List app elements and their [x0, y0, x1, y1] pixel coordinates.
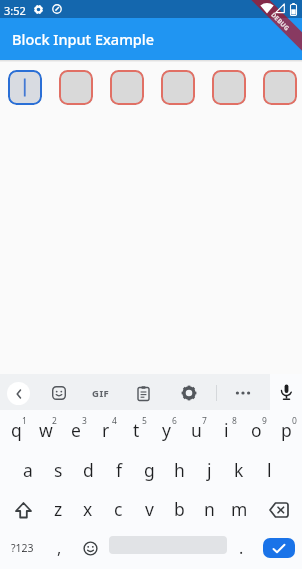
staticText: s — [54, 458, 63, 482]
staticText: 4 — [112, 415, 117, 427]
staticText: DEBUG — [270, 10, 292, 32]
staticText: d — [83, 458, 94, 482]
button[interactable]: v — [125, 489, 173, 529]
button[interactable] — [9, 496, 37, 524]
staticText: k — [234, 458, 244, 482]
staticText: 2 — [52, 415, 57, 427]
button[interactable]: . — [217, 528, 265, 568]
staticText: 7 — [202, 415, 207, 427]
button[interactable] — [263, 538, 295, 558]
button[interactable]: a — [4, 450, 52, 490]
button[interactable]: r — [82, 410, 130, 450]
staticText: Block Input Example — [12, 29, 155, 49]
button[interactable]: b — [155, 489, 203, 529]
button[interactable]: i — [202, 410, 250, 450]
staticText: t — [133, 418, 140, 442]
staticText: GIF — [92, 387, 110, 400]
button[interactable]: t — [112, 410, 160, 450]
button[interactable]: x — [64, 489, 112, 529]
staticText: 5 — [142, 415, 147, 427]
staticText: a — [23, 458, 33, 482]
button[interactable]: w — [22, 410, 70, 450]
staticText: v — [145, 497, 154, 521]
button[interactable]: c — [94, 489, 142, 529]
staticText: u — [191, 418, 202, 442]
button[interactable]: p — [262, 410, 302, 450]
staticText: i — [224, 418, 229, 442]
staticText: e — [71, 418, 81, 442]
button[interactable]: h — [155, 450, 203, 490]
staticText: 9 — [262, 415, 267, 427]
staticText: g — [144, 458, 155, 482]
button[interactable]: o — [232, 410, 280, 450]
staticText: h — [174, 458, 185, 482]
staticText: 3 — [82, 415, 87, 427]
button[interactable]: e — [52, 410, 100, 450]
staticText: ?123 — [11, 541, 34, 555]
button[interactable] — [161, 70, 195, 105]
staticText: m — [231, 497, 248, 521]
button[interactable] — [275, 381, 297, 405]
staticText: l — [267, 458, 272, 482]
staticText: r — [102, 418, 110, 442]
button[interactable] — [212, 70, 246, 105]
button[interactable]: s — [34, 450, 82, 490]
staticText: n — [204, 497, 215, 521]
staticText: p — [281, 418, 292, 442]
button[interactable] — [263, 70, 297, 105]
staticText: z — [54, 497, 63, 521]
staticText: . — [239, 537, 244, 559]
staticText: 1 — [22, 415, 27, 427]
button[interactable]: y — [142, 410, 190, 450]
button[interactable]: z — [34, 489, 82, 529]
button[interactable]: d — [64, 450, 112, 490]
button[interactable] — [78, 536, 102, 560]
button[interactable]: m — [215, 489, 263, 529]
staticText: f — [116, 458, 123, 482]
button[interactable] — [132, 382, 154, 404]
staticText: b — [174, 497, 185, 521]
button[interactable]: GIF — [77, 373, 125, 413]
button[interactable] — [59, 70, 93, 105]
staticText: 6 — [172, 415, 177, 427]
button[interactable] — [110, 70, 144, 105]
button[interactable] — [232, 382, 254, 404]
button[interactable]: ?123 — [0, 528, 46, 568]
staticText: y — [162, 418, 171, 442]
staticText: 3:52 — [4, 3, 26, 18]
staticText: , — [57, 537, 62, 559]
button[interactable]: , — [35, 528, 83, 568]
button[interactable] — [178, 382, 200, 404]
button[interactable] — [7, 382, 30, 405]
button[interactable]: q — [0, 410, 40, 450]
button[interactable]: l — [245, 450, 293, 490]
staticText: x — [83, 497, 93, 521]
button[interactable]: n — [185, 489, 233, 529]
button[interactable]: f — [95, 450, 143, 490]
button[interactable] — [48, 382, 70, 404]
button[interactable] — [265, 496, 293, 524]
button[interactable]: g — [125, 450, 173, 490]
staticText: 8 — [232, 415, 237, 427]
staticText: 0 — [292, 415, 297, 427]
button[interactable]: k — [215, 450, 263, 490]
button[interactable] — [8, 70, 42, 105]
staticText: q — [11, 418, 22, 442]
staticText: c — [114, 497, 123, 521]
staticText: w — [39, 418, 53, 442]
button[interactable]: u — [172, 410, 220, 450]
staticText: j — [207, 458, 212, 482]
button[interactable]: j — [185, 450, 233, 490]
staticText: o — [251, 418, 262, 442]
